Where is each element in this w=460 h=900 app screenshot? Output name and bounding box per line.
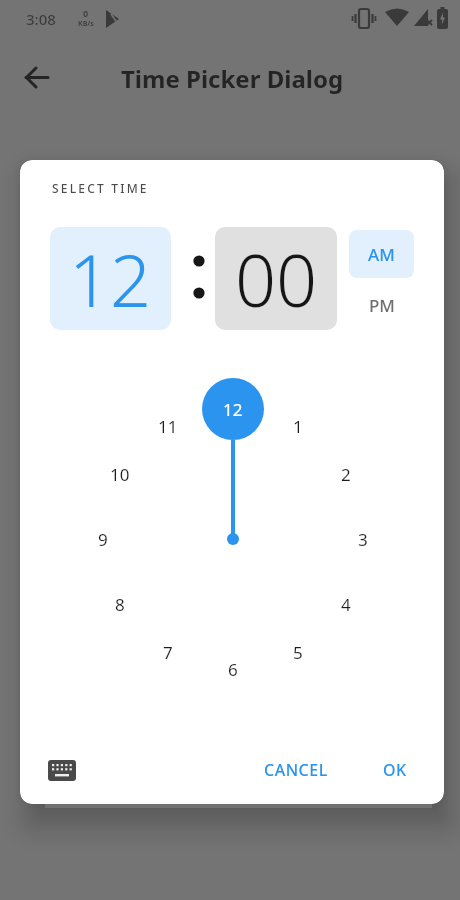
button[interactable]: 3 bbox=[341, 517, 385, 561]
staticText: 3:08 bbox=[26, 9, 56, 29]
staticText: KB/s bbox=[78, 19, 94, 29]
button[interactable]: 12 bbox=[50, 227, 171, 330]
staticText: 10 bbox=[110, 463, 130, 486]
staticText: 7 bbox=[163, 641, 173, 664]
button[interactable]: 10 bbox=[98, 452, 142, 496]
button[interactable]: 2 bbox=[324, 452, 368, 496]
staticText: 9 bbox=[98, 528, 108, 551]
button[interactable]: AM bbox=[349, 230, 414, 278]
button[interactable]: 5 bbox=[276, 630, 320, 674]
staticText: 0 bbox=[83, 7, 89, 19]
button[interactable]: 8 bbox=[98, 582, 142, 626]
button[interactable]: 4 bbox=[324, 582, 368, 626]
button[interactable]: 12 bbox=[211, 387, 255, 431]
button[interactable]: 00 bbox=[215, 227, 337, 330]
staticText: 00 bbox=[235, 230, 318, 328]
button[interactable]: 7 bbox=[146, 630, 190, 674]
staticText: 3 bbox=[358, 528, 368, 551]
staticText: 6 bbox=[228, 658, 238, 681]
staticText: AM bbox=[368, 243, 395, 266]
staticText: 2 bbox=[341, 463, 351, 486]
staticText: 5 bbox=[293, 641, 303, 664]
staticText: PM bbox=[369, 294, 395, 317]
staticText: 12 bbox=[223, 398, 243, 421]
staticText: CANCEL bbox=[264, 759, 328, 781]
staticText: Time Picker Dialog bbox=[121, 62, 344, 95]
staticText: 4 bbox=[341, 593, 351, 616]
staticText: 12 bbox=[69, 230, 152, 328]
button[interactable]: 6 bbox=[211, 647, 255, 691]
staticText: 8 bbox=[115, 593, 125, 616]
staticText: 1 bbox=[293, 415, 303, 438]
staticText: OK bbox=[383, 759, 407, 781]
staticText: SELECT TIME bbox=[52, 180, 149, 196]
button[interactable]: OK bbox=[364, 752, 426, 788]
button[interactable]: PM bbox=[349, 282, 414, 328]
button[interactable]: 1 bbox=[276, 404, 320, 448]
button[interactable] bbox=[13, 54, 61, 102]
staticText: 11 bbox=[158, 415, 178, 438]
button[interactable]: CANCEL bbox=[252, 752, 340, 788]
button[interactable]: 9 bbox=[81, 517, 125, 561]
button[interactable]: 11 bbox=[146, 404, 190, 448]
button[interactable] bbox=[42, 750, 82, 790]
